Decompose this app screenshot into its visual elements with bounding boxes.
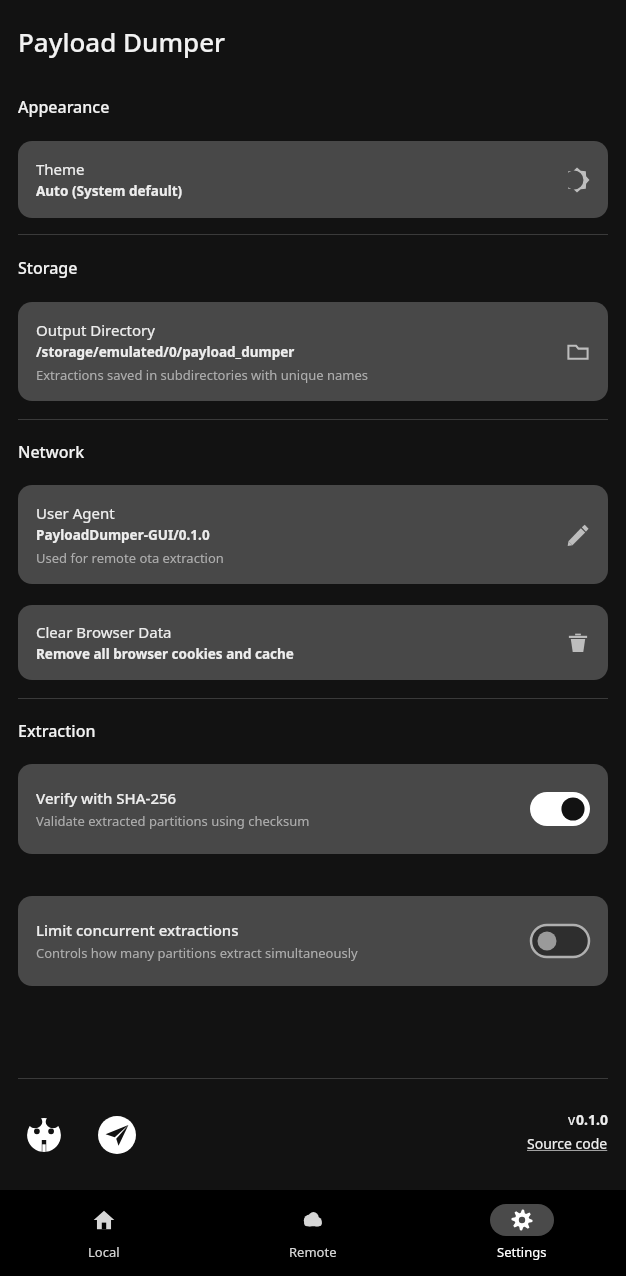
staticText: v — [568, 1110, 576, 1129]
staticText: Network — [18, 441, 85, 463]
staticText: Validate extracted partitions using chec… — [36, 812, 310, 830]
other: Clear browser data — [566, 631, 590, 655]
button[interactable]: Source code — [527, 1134, 608, 1153]
staticText: Limit concurrent extractions — [36, 920, 239, 940]
staticText: Storage — [18, 257, 78, 279]
staticText: User Agent — [36, 503, 115, 523]
button[interactable]: Output Directory — [18, 302, 608, 401]
other: Verify with SHA-256 toggle — [530, 792, 590, 826]
staticText: PayloadDumper-GUI/0.1.0 — [36, 526, 210, 544]
staticText: Remote — [289, 1243, 337, 1261]
button[interactable]: Remote — [208, 1190, 417, 1276]
staticText: Settings — [497, 1243, 547, 1261]
button[interactable]: Settings — [417, 1190, 626, 1276]
button[interactable]: Verify with SHA-256 — [18, 764, 608, 854]
staticText: Output Directory — [36, 320, 155, 340]
button[interactable]: Limit concurrent extractions — [18, 896, 608, 986]
staticText: Used for remote ota extraction — [36, 549, 224, 567]
staticText: Clear Browser Data — [36, 622, 172, 642]
other: Choose output folder — [566, 340, 590, 364]
staticText: 0.1.0 — [576, 1110, 608, 1129]
other: Limit concurrent extractions toggle — [530, 924, 590, 958]
button[interactable]: Telegram — [98, 1116, 136, 1154]
staticText: Source code — [527, 1134, 608, 1153]
button[interactable]: GitHub — [26, 1117, 62, 1153]
staticText: Appearance — [18, 96, 110, 118]
button[interactable]: Local — [0, 1190, 208, 1276]
staticText: Theme — [36, 159, 85, 179]
button[interactable]: Clear Browser Data — [18, 605, 608, 680]
staticText: Payload Dumper — [18, 24, 226, 59]
staticText: /storage/emulated/0/payload_dumper — [36, 343, 295, 361]
button[interactable]: User Agent — [18, 485, 608, 584]
button[interactable]: Theme — [18, 141, 608, 218]
other: Theme — [564, 167, 590, 193]
staticText: Extractions saved in subdirectories with… — [36, 366, 368, 384]
other: Edit user agent — [566, 523, 590, 547]
staticText: Auto (System default) — [36, 182, 183, 200]
staticText: Local — [88, 1243, 120, 1261]
staticText: Remove all browser cookies and cache — [36, 645, 294, 663]
staticText: Controls how many partitions extract sim… — [36, 944, 358, 962]
staticText: Extraction — [18, 720, 96, 742]
staticText: Verify with SHA-256 — [36, 788, 177, 808]
